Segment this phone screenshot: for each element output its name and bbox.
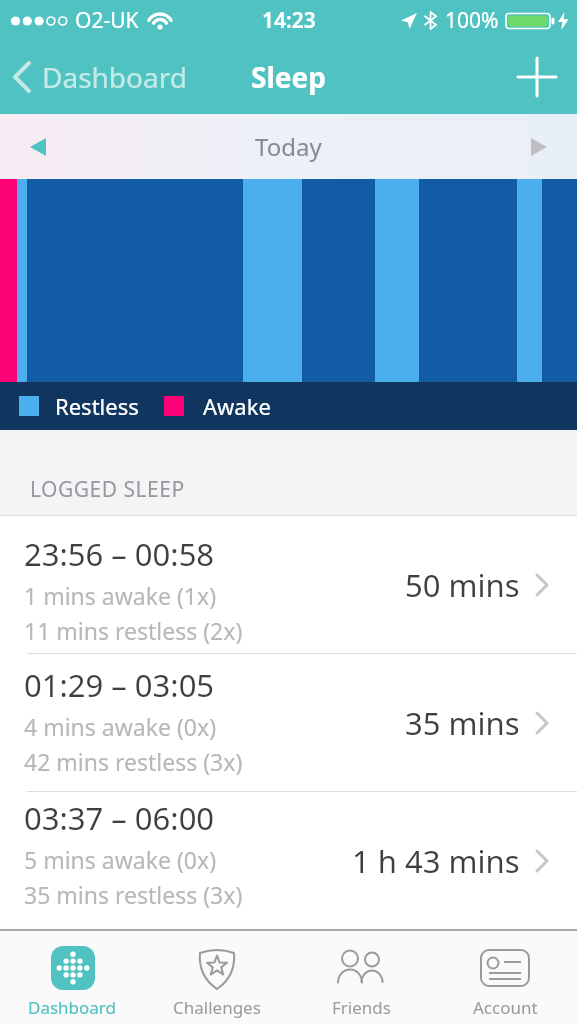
staticText: 1 mins awake (1x): [24, 580, 217, 611]
staticText: 5 mins awake (0x): [24, 844, 217, 875]
staticText: 100%: [445, 6, 499, 35]
button[interactable]: Account: [433, 931, 577, 1024]
staticText: 1 h 43 mins: [352, 840, 520, 882]
button[interactable]: [22, 131, 54, 163]
staticText: LOGGED SLEEP: [30, 475, 185, 504]
button[interactable]: 23:56 – 00:58: [0, 516, 577, 653]
staticText: 14:23: [262, 6, 316, 35]
staticText: 4 mins awake (0x): [24, 711, 217, 742]
button[interactable]: [523, 131, 555, 163]
staticText: Restless: [55, 391, 139, 421]
staticText: 42 mins restless (3x): [24, 746, 243, 777]
staticText: Today: [255, 130, 322, 163]
staticText: Challenges: [173, 996, 261, 1019]
staticText: 01:29 – 03:05: [24, 664, 215, 706]
button[interactable]: 03:37 – 06:00: [0, 792, 577, 929]
staticText: 23:56 – 00:58: [24, 533, 215, 575]
staticText: 35 mins restless (3x): [24, 879, 243, 910]
staticText: 03:37 – 06:00: [24, 797, 215, 839]
button[interactable]: Dashboard: [12, 58, 187, 96]
staticText: Awake: [203, 391, 271, 421]
staticText: 50 mins: [405, 564, 520, 606]
button[interactable]: Challenges: [145, 931, 289, 1024]
button[interactable]: 01:29 – 03:05: [0, 654, 577, 791]
button[interactable]: Friends: [289, 931, 433, 1024]
staticText: 11 mins restless (2x): [24, 615, 243, 646]
staticText: 35 mins: [405, 702, 520, 744]
button[interactable]: [515, 55, 559, 99]
button[interactable]: Dashboard: [0, 931, 145, 1024]
staticText: Sleep: [251, 58, 326, 96]
staticText: Dashboard: [42, 58, 187, 96]
staticText: Account: [473, 996, 538, 1019]
staticText: Friends: [332, 996, 391, 1019]
staticText: O2-UK: [75, 6, 139, 35]
staticText: Dashboard: [28, 996, 117, 1019]
